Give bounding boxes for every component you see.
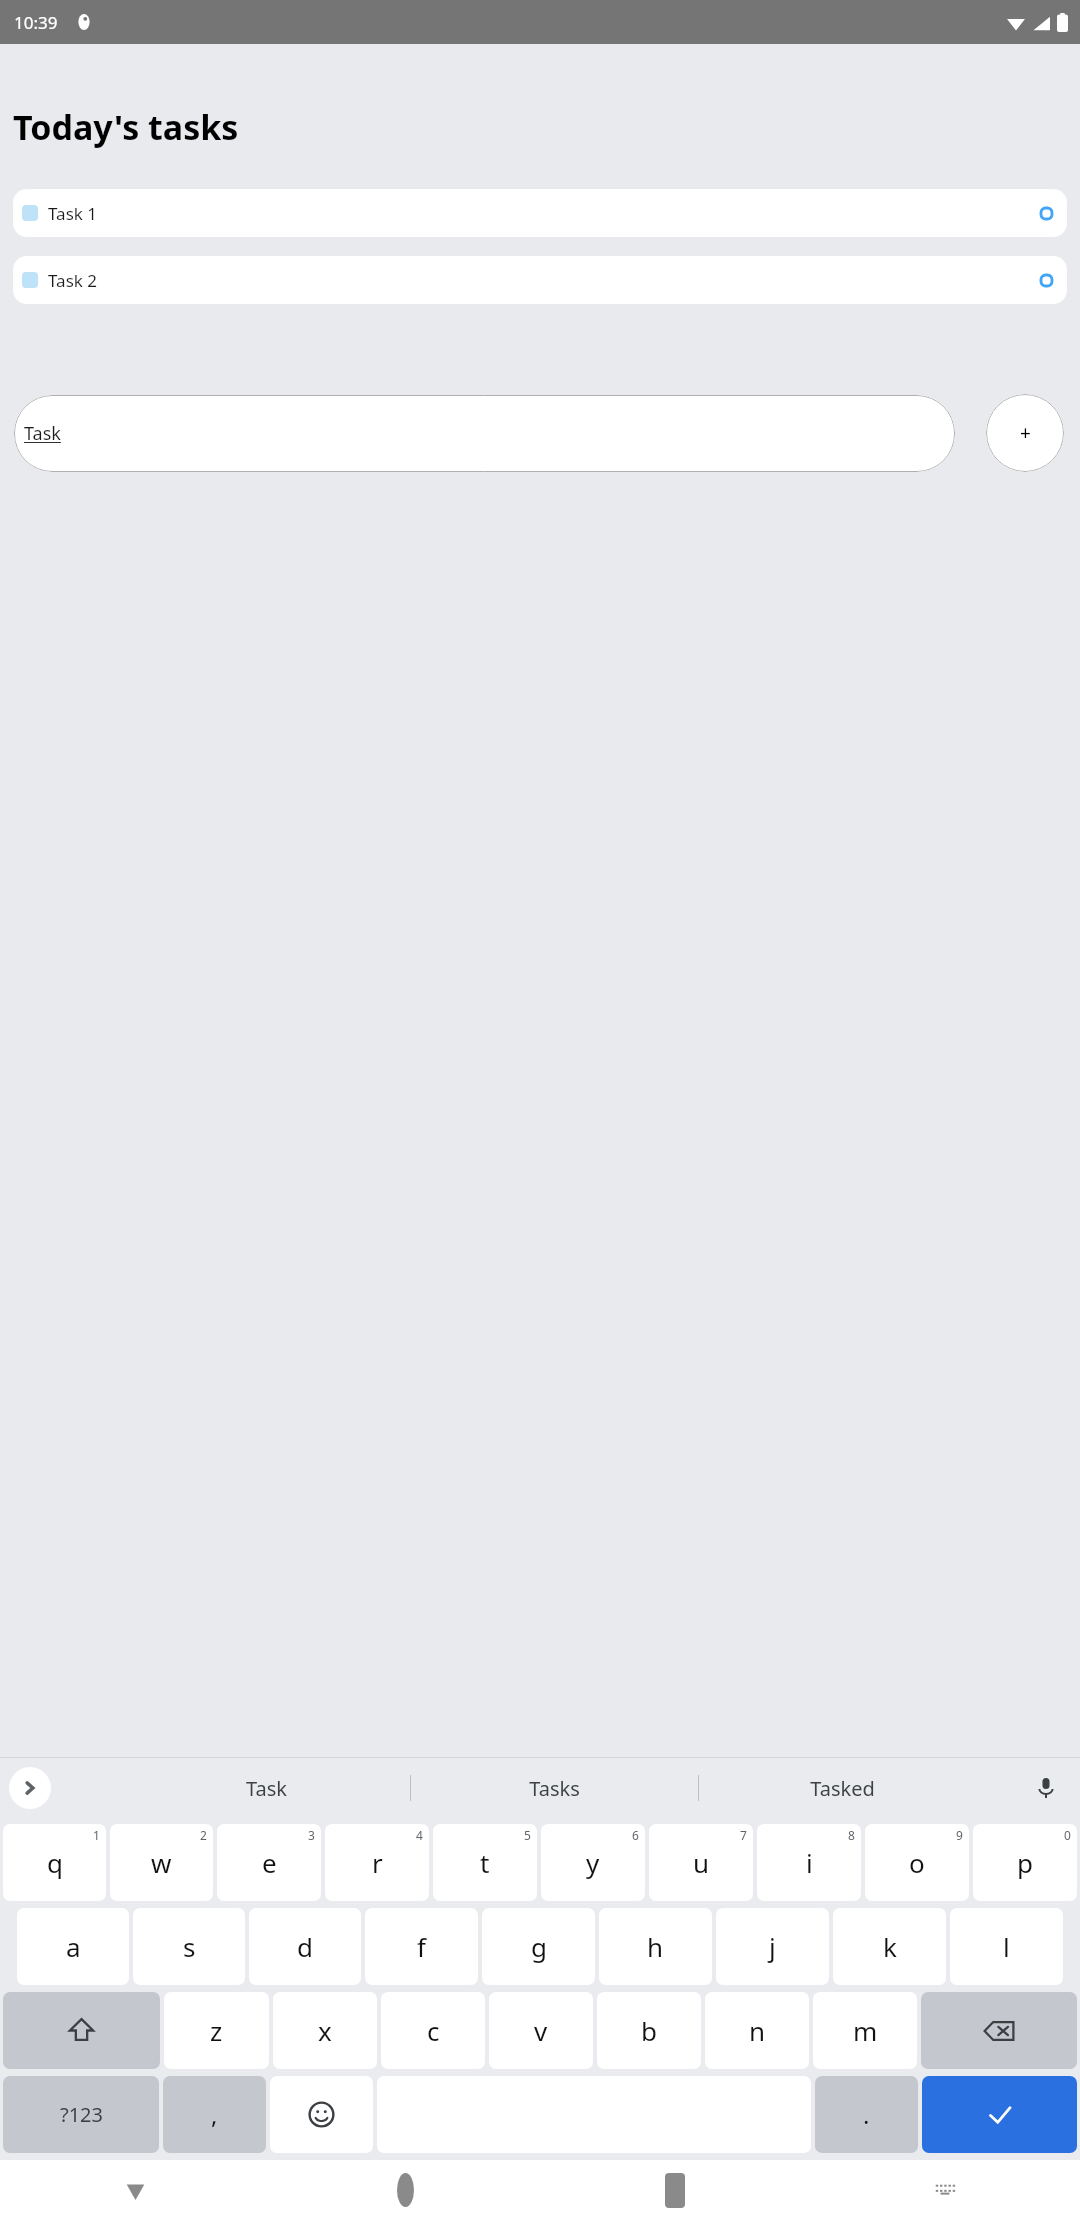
staticText: Tasks [529,1775,580,1802]
button[interactable]: x [273,1992,377,2069]
button[interactable]: j [716,1908,829,1985]
staticText: . [863,2098,870,2131]
button[interactable]: Voice input [1026,1768,1066,1808]
button[interactable]: Tasked [699,1762,986,1814]
staticText: Tasked [810,1775,875,1802]
button[interactable]: m [813,1992,917,2069]
button[interactable]: Enter [922,2076,1077,2153]
staticText: o [909,1845,925,1880]
staticText: 3 [308,1827,315,1843]
staticText: r [372,1845,383,1880]
staticText: Task 2 [48,269,97,292]
button[interactable]: Shift [3,1992,160,2069]
staticText: p [1017,1845,1033,1880]
button[interactable]: k [833,1908,946,1985]
staticText: 10:39 [14,11,58,34]
staticText: + [1020,420,1031,446]
staticText: b [641,2013,657,2048]
button[interactable]: a [17,1908,129,1985]
button[interactable]: Task [14,395,955,472]
button[interactable]: h [599,1908,712,1985]
staticText: 1 [93,1827,100,1843]
button[interactable]: d [249,1908,361,1985]
staticText: u [693,1845,710,1880]
button[interactable]: c [381,1992,485,2069]
button[interactable]: b [597,1992,701,2069]
staticText: e [262,1845,277,1880]
staticText: n [749,2013,766,2048]
staticText: 7 [740,1827,747,1843]
staticText: Today's tasks [13,104,239,150]
staticText: 5 [524,1827,531,1843]
staticText: k [883,1929,897,1964]
button[interactable]: v [489,1992,593,2069]
button[interactable]: Task 2 [13,256,1067,304]
button[interactable]: n [705,1992,809,2069]
button[interactable]: o [865,1824,969,1901]
staticText: 4 [416,1827,423,1843]
staticText: t [480,1845,490,1880]
button[interactable]: Backspace [921,1992,1077,2069]
button[interactable]: g [482,1908,595,1985]
button[interactable]: s [133,1908,245,1985]
button[interactable]: Expand toolbar [9,1767,51,1809]
button[interactable]: l [950,1908,1063,1985]
button[interactable]: Add task [986,394,1064,472]
staticText: s [183,1929,196,1964]
button[interactable]: p [973,1824,1077,1901]
button[interactable]: Home [270,2160,540,2220]
staticText: i [806,1845,813,1880]
staticText: v [534,2013,548,2048]
staticText: 8 [848,1827,855,1843]
staticText: , [211,2098,218,2131]
staticText: q [47,1845,63,1880]
staticText: d [297,1929,313,1964]
button[interactable]: y [541,1824,645,1901]
button[interactable]: u [649,1824,753,1901]
staticText: 2 [200,1827,207,1843]
button[interactable]: t [433,1824,537,1901]
staticText: m [853,2013,878,2048]
button[interactable]: f [365,1908,478,1985]
staticText: ?123 [60,2101,103,2128]
staticText: y [586,1845,600,1880]
staticText: Task 1 [48,202,97,225]
button[interactable]: q [3,1824,106,1901]
staticText: a [66,1929,81,1964]
staticText: x [318,2013,332,2048]
staticText: 9 [956,1827,963,1843]
button[interactable]: Recent apps [540,2160,810,2220]
button[interactable]: Task 1 [13,189,1067,237]
staticText: z [210,2013,223,2048]
button[interactable]: Task [122,1762,410,1814]
button[interactable]: Switch keyboard [810,2160,1080,2220]
button[interactable]: e [217,1824,321,1901]
button[interactable]: Tasks [411,1762,698,1814]
button[interactable]: Back [0,2160,270,2220]
staticText: c [427,2013,440,2048]
staticText: w [151,1845,172,1880]
button[interactable]: w [110,1824,213,1901]
button[interactable]: z [164,1992,269,2069]
button[interactable]: . [815,2076,918,2153]
staticText: 0 [1064,1827,1071,1843]
staticText: f [417,1929,426,1964]
staticText: Task [246,1775,287,1802]
button[interactable]: i [757,1824,861,1901]
button[interactable]: Toggle Task 2 [1033,267,1059,293]
button[interactable]: , [163,2076,266,2153]
button[interactable]: r [325,1824,429,1901]
staticText: l [1003,1929,1010,1964]
staticText: 6 [632,1827,639,1843]
staticText: Task [24,421,61,446]
button[interactable]: ?123 [3,2076,159,2153]
button[interactable]: Toggle Task 1 [1033,200,1059,226]
staticText: j [769,1929,776,1964]
staticText: h [647,1929,664,1964]
staticText: g [531,1929,547,1964]
button[interactable]: Emoji [270,2076,373,2153]
